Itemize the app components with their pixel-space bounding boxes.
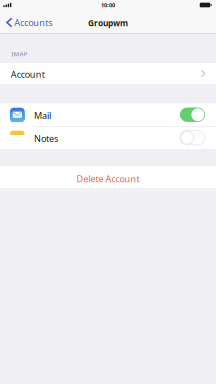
button[interactable]: Account: [0, 63, 216, 84]
staticText: IMAP: [11, 50, 27, 58]
button[interactable]: Mail: [0, 103, 216, 126]
button[interactable]: Notes: [0, 126, 216, 149]
staticText: 10:00: [101, 1, 115, 9]
staticText: Account: [11, 68, 45, 80]
button[interactable]: Delete Account: [0, 166, 216, 188]
staticText: Delete Account: [76, 173, 139, 185]
staticText: Accounts: [14, 16, 52, 29]
staticText: Mail: [34, 109, 51, 122]
button[interactable]: Accounts: [0, 10, 57, 34]
staticText: Notes: [34, 132, 58, 145]
staticText: Groupwm: [88, 17, 128, 29]
